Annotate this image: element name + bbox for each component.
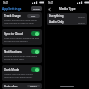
staticText: Auto-play Preview [4,85,25,87]
button[interactable]: Auto-play Preview [2,83,42,89]
staticText: Keep your library backed up and synced a… [4,37,40,43]
staticText: Notifications [4,50,29,54]
button[interactable]: Dark Mode [2,65,42,81]
staticText: Dark Mode [4,68,29,72]
staticText: Receive alerts when new items arrive in … [4,55,40,61]
button[interactable]: Everything [47,13,87,19]
staticText: 9:41 [48,1,54,5]
button[interactable]: OFF [27,14,40,18]
staticText: Select [78,21,85,24]
staticText: Everything [49,14,78,18]
staticText: Select [78,15,85,18]
button[interactable]: Notifications [2,47,42,63]
button[interactable]: Sync to Cloud [2,29,42,45]
staticText: Sync to Cloud [4,32,29,36]
button[interactable]: Select [27,85,40,87]
staticText: Media Type [59,7,76,11]
staticText: Audio Only [49,20,78,24]
staticText: Track Usage Statistics [4,14,25,18]
staticText: OFF [31,15,36,18]
staticText: AppSettings [2,7,22,11]
button[interactable]: Check [31,6,42,11]
button[interactable]: Back [46,6,52,12]
button[interactable]: Track Usage Statistics [2,12,42,27]
button[interactable]: Toggle [31,67,40,72]
button[interactable]: Toggle [31,49,40,54]
staticText: Check [33,7,40,10]
staticText: 9:41 [3,1,9,5]
staticText: Collect anonymous data about how the app… [4,19,40,25]
button[interactable]: Toggle [31,31,40,36]
staticText: Select [30,85,37,87]
button[interactable]: Audio Only [47,19,87,25]
staticText: Always use the dark colour theme for thi… [4,73,40,79]
